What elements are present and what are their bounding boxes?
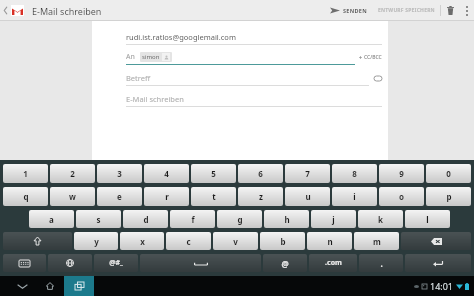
staticText: 7	[305, 168, 310, 179]
staticText: u	[305, 191, 311, 202]
button[interactable]: .	[359, 254, 403, 272]
staticText: c	[186, 236, 191, 247]
staticText: E-Mail schreiben	[126, 94, 184, 104]
button[interactable]: SENDEN	[326, 0, 371, 21]
button[interactable]: Tastatur schließen	[3, 254, 46, 272]
button[interactable]: Sprache wechseln	[48, 254, 92, 272]
button[interactable]: 2	[50, 164, 95, 183]
staticText: b	[280, 236, 286, 247]
button[interactable]: Leertaste	[140, 254, 261, 272]
button[interactable]: 4	[144, 164, 189, 183]
staticText: t	[212, 191, 216, 202]
button[interactable]: Zuletzt verwendete Apps	[64, 276, 94, 296]
button[interactable]: w	[50, 187, 95, 206]
button[interactable]: 9	[379, 164, 424, 183]
button[interactable]: n	[307, 232, 352, 250]
button[interactable]: h	[264, 210, 309, 228]
staticText: 14:01	[430, 280, 454, 292]
button[interactable]: Löschen	[401, 232, 471, 250]
staticText: 0	[446, 168, 451, 179]
button[interactable]: e	[97, 187, 142, 206]
button[interactable]: v	[213, 232, 258, 250]
staticText: 8	[352, 168, 357, 179]
button[interactable]: t	[191, 187, 236, 206]
button[interactable]: 7	[285, 164, 330, 183]
button[interactable]: 5	[191, 164, 236, 183]
staticText: q	[23, 191, 29, 202]
button[interactable]: Startbildschirm	[36, 276, 64, 296]
button[interactable]: u	[285, 187, 330, 206]
button[interactable]: f	[170, 210, 215, 228]
staticText: d	[143, 214, 149, 225]
button[interactable]: y	[74, 232, 118, 250]
button[interactable]: c	[166, 232, 211, 250]
staticText: .com	[325, 258, 342, 268]
button[interactable]: Löschen	[441, 0, 460, 21]
button[interactable]: q	[3, 187, 48, 206]
button[interactable]: 3	[97, 164, 142, 183]
staticText: g	[237, 214, 243, 225]
button[interactable]: .com	[309, 254, 357, 272]
staticText: v	[233, 236, 238, 247]
staticText: 3	[117, 168, 122, 179]
staticText: 1	[23, 168, 28, 179]
button[interactable]: l	[405, 210, 450, 228]
button[interactable]: Tastatur ausblenden	[8, 276, 36, 296]
button[interactable]: @#_	[94, 254, 138, 272]
button[interactable]: An	[126, 50, 355, 64]
staticText: SENDEN	[343, 7, 367, 14]
button[interactable]: 0	[426, 164, 471, 183]
button[interactable]: p	[426, 187, 471, 206]
button[interactable]: k	[358, 210, 403, 228]
button[interactable]: simon	[140, 52, 172, 62]
staticText: @	[281, 258, 289, 269]
staticText: 4	[164, 168, 169, 179]
button[interactable]: ENTWURF SPEICHERN	[375, 0, 438, 21]
button[interactable]: m	[354, 232, 399, 250]
button[interactable]: Eingabe	[405, 254, 471, 272]
button[interactable]: g	[217, 210, 262, 228]
staticText: 6	[258, 168, 263, 179]
staticText: s	[96, 214, 101, 225]
staticText: ENTWURF SPEICHERN	[378, 7, 435, 14]
staticText: h	[284, 214, 290, 225]
button[interactable]: z	[238, 187, 283, 206]
button[interactable]: r	[144, 187, 189, 206]
staticText: k	[378, 214, 383, 225]
button[interactable]: E-Mail schreiben	[126, 92, 382, 106]
button[interactable]: @	[263, 254, 307, 272]
staticText: z	[259, 191, 263, 202]
button[interactable]: 1	[3, 164, 48, 183]
button[interactable]: d	[123, 210, 168, 228]
button[interactable]: Zurück	[0, 0, 28, 21]
staticText: i	[353, 191, 356, 202]
button[interactable]: a	[29, 210, 74, 228]
button[interactable]: o	[379, 187, 424, 206]
button[interactable]: Umschalttaste	[3, 232, 72, 250]
staticText: e	[117, 191, 122, 202]
button[interactable]: CC/BCC	[355, 54, 382, 61]
staticText: y	[94, 236, 99, 247]
staticText: l	[426, 214, 429, 225]
staticText: simon	[142, 53, 160, 61]
staticText: @#_	[109, 258, 123, 268]
staticText: .	[380, 258, 383, 269]
button[interactable]: 8	[332, 164, 377, 183]
staticText: rudi.ist.ratlos@googlemail.com	[126, 32, 236, 42]
button[interactable]: Weitere Optionen	[460, 0, 474, 21]
button[interactable]: s	[76, 210, 121, 228]
staticText: o	[399, 191, 404, 202]
button[interactable]: Anhang	[369, 76, 382, 81]
button[interactable]: b	[260, 232, 305, 250]
staticText: w	[69, 191, 76, 202]
staticText: 2	[70, 168, 75, 179]
button[interactable]: i	[332, 187, 377, 206]
button[interactable]: x	[120, 232, 164, 250]
staticText: x	[140, 236, 145, 247]
button[interactable]: j	[311, 210, 356, 228]
staticText: p	[446, 191, 452, 202]
button[interactable]: rudi.ist.ratlos@googlemail.com	[126, 30, 382, 44]
button[interactable]: Betreff	[126, 71, 369, 85]
button[interactable]: 6	[238, 164, 283, 183]
staticText: f	[191, 214, 195, 225]
